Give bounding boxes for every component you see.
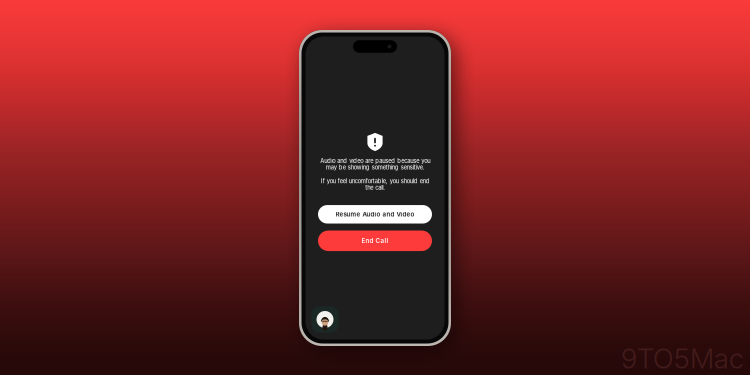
button[interactable]: Self view [311,306,338,332]
staticText: End Call [361,237,388,244]
staticText: If you feel uncomfortable, you should en… [320,178,429,191]
button[interactable]: End Call [318,231,432,251]
staticText: 9TO5Mac [621,342,744,375]
staticText: Audio and video are paused because you m… [320,157,430,171]
staticText: Resume Audio and Video [335,211,414,218]
button[interactable]: Resume Audio and Video [318,205,432,224]
